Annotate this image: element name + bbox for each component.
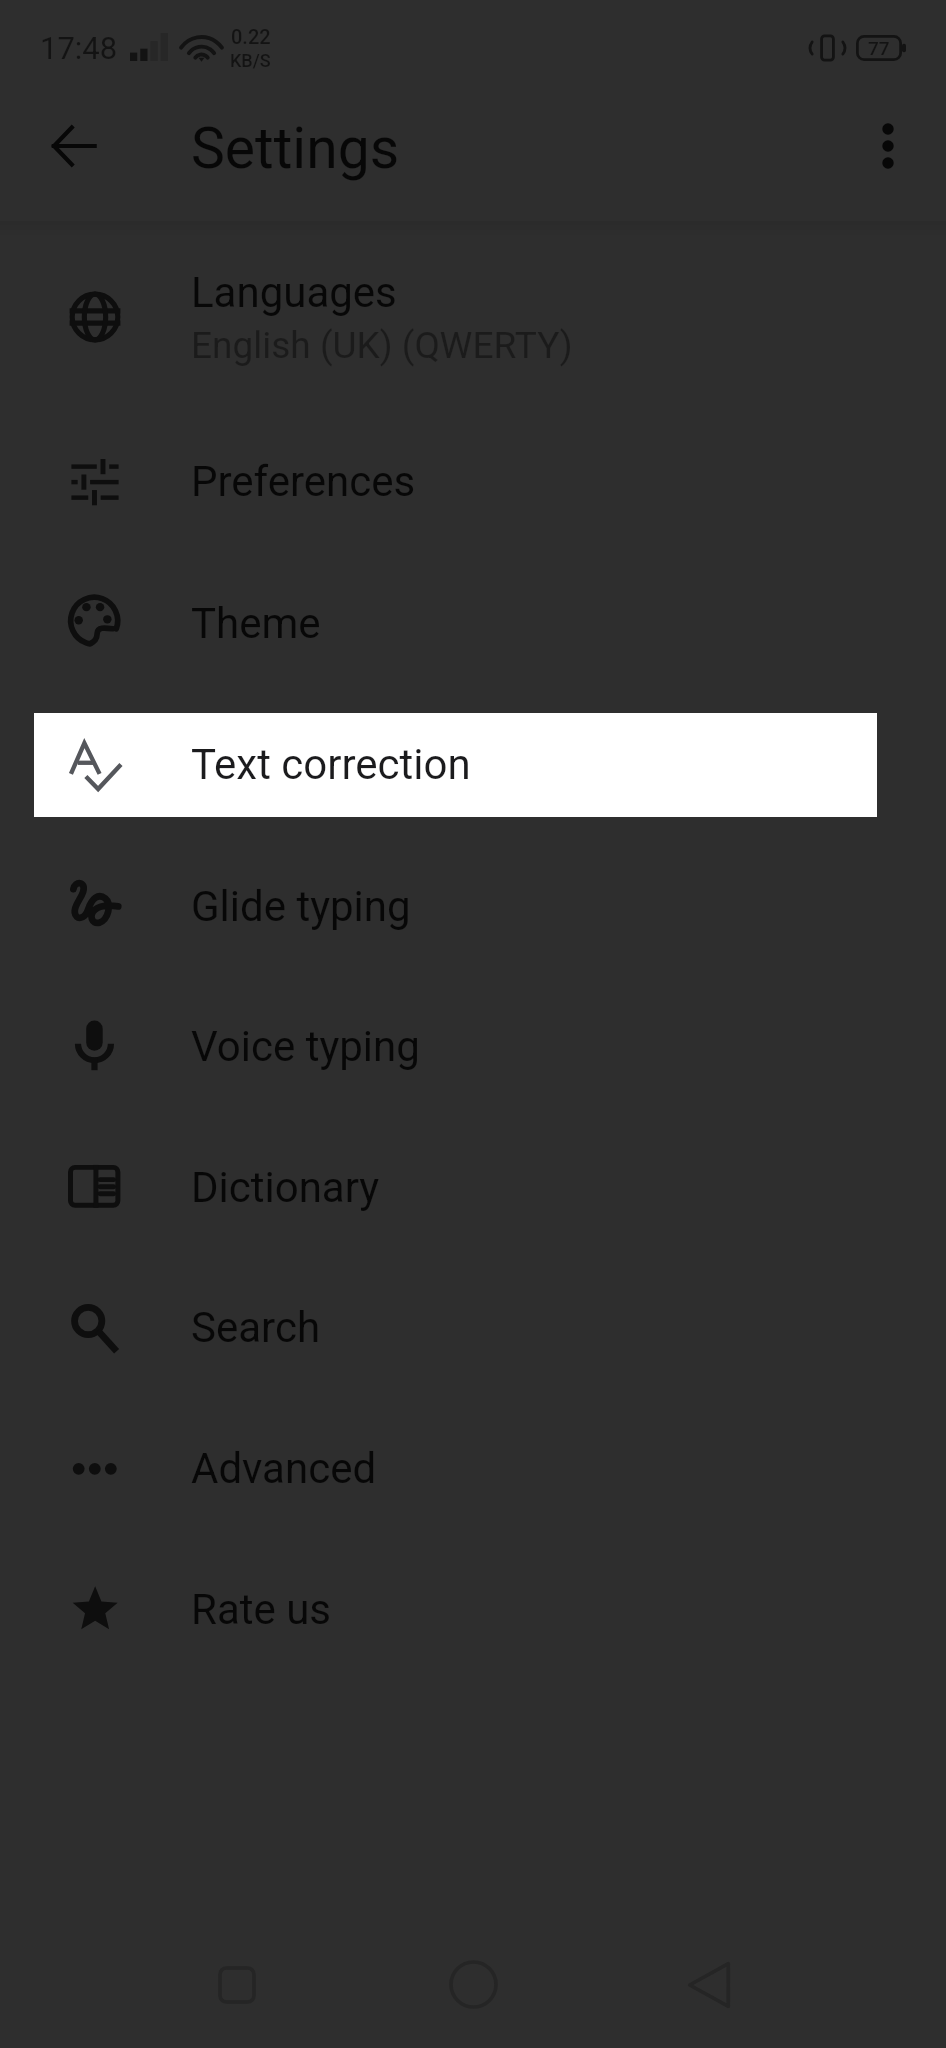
staticText: Voice typing bbox=[191, 1022, 420, 1071]
staticText: 0.22 bbox=[231, 25, 271, 48]
button[interactable]: Glide typing bbox=[0, 836, 946, 977]
button[interactable]: Voice typing bbox=[0, 976, 946, 1117]
button[interactable]: Preferences bbox=[0, 411, 946, 552]
button[interactable]: Text correction bbox=[0, 694, 946, 835]
staticText: Theme bbox=[191, 599, 321, 648]
staticText: Search bbox=[191, 1303, 321, 1352]
staticText: Settings bbox=[191, 115, 400, 182]
staticText: English (UK) (QWERTY) bbox=[191, 324, 573, 367]
button[interactable]: More options bbox=[842, 100, 934, 192]
staticText: Dictionary bbox=[191, 1163, 380, 1212]
button[interactable]: Dictionary bbox=[0, 1117, 946, 1258]
button[interactable]: Back bbox=[28, 100, 120, 192]
staticText: Languages bbox=[191, 268, 397, 317]
button[interactable]: Languages bbox=[0, 246, 946, 387]
staticText: Advanced bbox=[191, 1444, 377, 1493]
button[interactable]: Search bbox=[0, 1257, 946, 1398]
staticText: KB/S bbox=[230, 50, 271, 71]
button[interactable]: Theme bbox=[0, 553, 946, 694]
staticText: 77 bbox=[868, 37, 890, 59]
staticText: Glide typing bbox=[191, 882, 411, 931]
staticText: Rate us bbox=[191, 1585, 331, 1634]
staticText: Preferences bbox=[191, 457, 416, 506]
button[interactable]: Advanced bbox=[0, 1398, 946, 1539]
staticText: 17:48 bbox=[40, 30, 118, 66]
staticText: Text correction bbox=[191, 740, 471, 789]
button[interactable]: Rate us bbox=[0, 1539, 946, 1680]
